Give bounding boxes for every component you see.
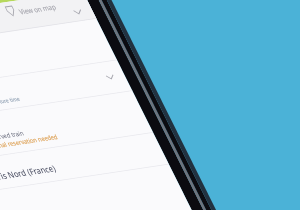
button[interactable]: [0, 0, 300, 210]
